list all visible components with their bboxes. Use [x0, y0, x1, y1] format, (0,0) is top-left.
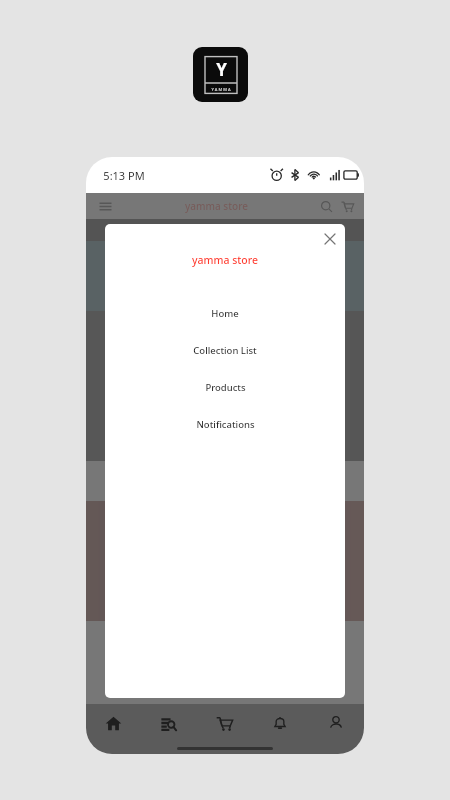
staticText: Home: [211, 307, 239, 320]
button[interactable]: Search catalog: [141, 704, 196, 742]
staticText: Y: [216, 58, 227, 81]
button[interactable]: yamma store: [105, 252, 345, 268]
button[interactable]: Close: [315, 224, 345, 254]
staticText: Y A M M A: [211, 87, 231, 92]
button[interactable]: Notifications: [252, 704, 308, 742]
button[interactable]: Notifications: [105, 406, 345, 443]
staticText: Products: [205, 381, 246, 394]
button[interactable]: Home: [105, 295, 345, 332]
button[interactable]: Cart: [196, 704, 252, 742]
button[interactable]: Account: [308, 704, 364, 742]
staticText: Notifications: [196, 418, 255, 431]
staticText: yamma store: [192, 253, 258, 267]
staticText: 5:13 PM: [103, 168, 145, 183]
button[interactable]: Products: [105, 369, 345, 406]
staticText: yamma store: [185, 199, 248, 213]
button[interactable]: Collection List: [105, 332, 345, 369]
button[interactable]: Yamma app icon: [193, 47, 248, 102]
button[interactable]: Home: [86, 704, 141, 742]
staticText: Collection List: [193, 344, 257, 357]
